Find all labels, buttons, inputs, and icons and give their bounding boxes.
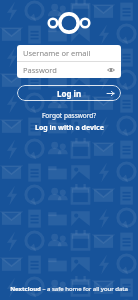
button[interactable]: Password	[17, 62, 121, 78]
staticText: Nextcloud – a safe home for all your dat…	[10, 285, 128, 293]
staticText: Password	[23, 65, 106, 75]
button[interactable]: Forgot password?	[0, 110, 138, 120]
button[interactable]: Username or email	[17, 45, 121, 61]
staticText: Username or email	[23, 48, 91, 58]
staticText: Forgot password?	[42, 111, 97, 120]
button[interactable]: Log in	[17, 85, 121, 101]
staticText: Log in with a device	[35, 123, 104, 133]
button[interactable]: Show password	[106, 65, 116, 75]
button[interactable]: Log in with a device	[0, 122, 138, 133]
staticText: Log in	[57, 88, 82, 99]
